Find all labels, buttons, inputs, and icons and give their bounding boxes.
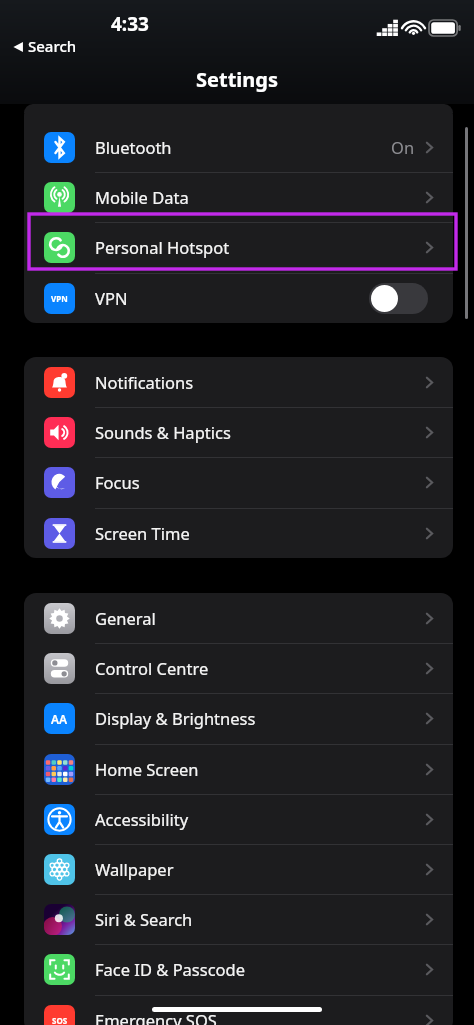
button[interactable]: VPN [24, 273, 453, 323]
button[interactable]: Bluetooth [24, 122, 453, 172]
staticText: On [391, 136, 415, 158]
staticText: Notifications [95, 371, 194, 393]
button[interactable]: Siri & Search [24, 894, 453, 944]
button[interactable]: VPN toggle [369, 283, 428, 314]
staticText: Screen Time [95, 522, 190, 544]
staticText: Accessibility [95, 808, 189, 830]
staticText: Focus [95, 471, 140, 493]
staticText: Mobile Data [95, 186, 189, 208]
button[interactable]: Control Centre [24, 643, 453, 693]
staticText: Personal Hotspot [95, 236, 230, 258]
staticText: General [95, 607, 156, 629]
staticText: 4:33 [111, 11, 149, 37]
button[interactable]: Focus [24, 457, 453, 507]
button[interactable]: Notifications [24, 357, 453, 407]
staticText: Display & Brightness [95, 707, 256, 729]
button[interactable]: AA [24, 693, 453, 743]
staticText: Bluetooth [95, 136, 172, 158]
staticText: VPN [51, 293, 68, 304]
staticText: Sounds & Haptics [95, 421, 231, 443]
button[interactable]: Home Screen [24, 744, 453, 794]
button[interactable]: Accessibility [24, 794, 453, 844]
staticText: Control Centre [95, 657, 209, 679]
button[interactable]: Sounds & Haptics [24, 407, 453, 457]
button[interactable]: Personal Hotspot [24, 222, 453, 272]
staticText: AA [51, 711, 68, 727]
staticText: Wallpaper [95, 858, 174, 880]
staticText: Face ID & Passcode [95, 958, 246, 980]
button[interactable]: SOS [24, 995, 453, 1025]
button[interactable]: Screen Time [24, 508, 453, 558]
staticText: Emergency SOS [95, 1009, 217, 1025]
staticText: Siri & Search [95, 908, 193, 930]
button[interactable]: General [24, 593, 453, 643]
button[interactable]: Mobile Data [24, 172, 453, 222]
staticText: Search [28, 36, 77, 56]
staticText: Settings [196, 66, 278, 93]
staticText: SOS [52, 1015, 68, 1025]
button[interactable]: Face ID & Passcode [24, 944, 453, 994]
staticText: Home Screen [95, 758, 199, 780]
button[interactable]: Wallpaper [24, 844, 453, 894]
staticText: VPN [95, 287, 128, 309]
